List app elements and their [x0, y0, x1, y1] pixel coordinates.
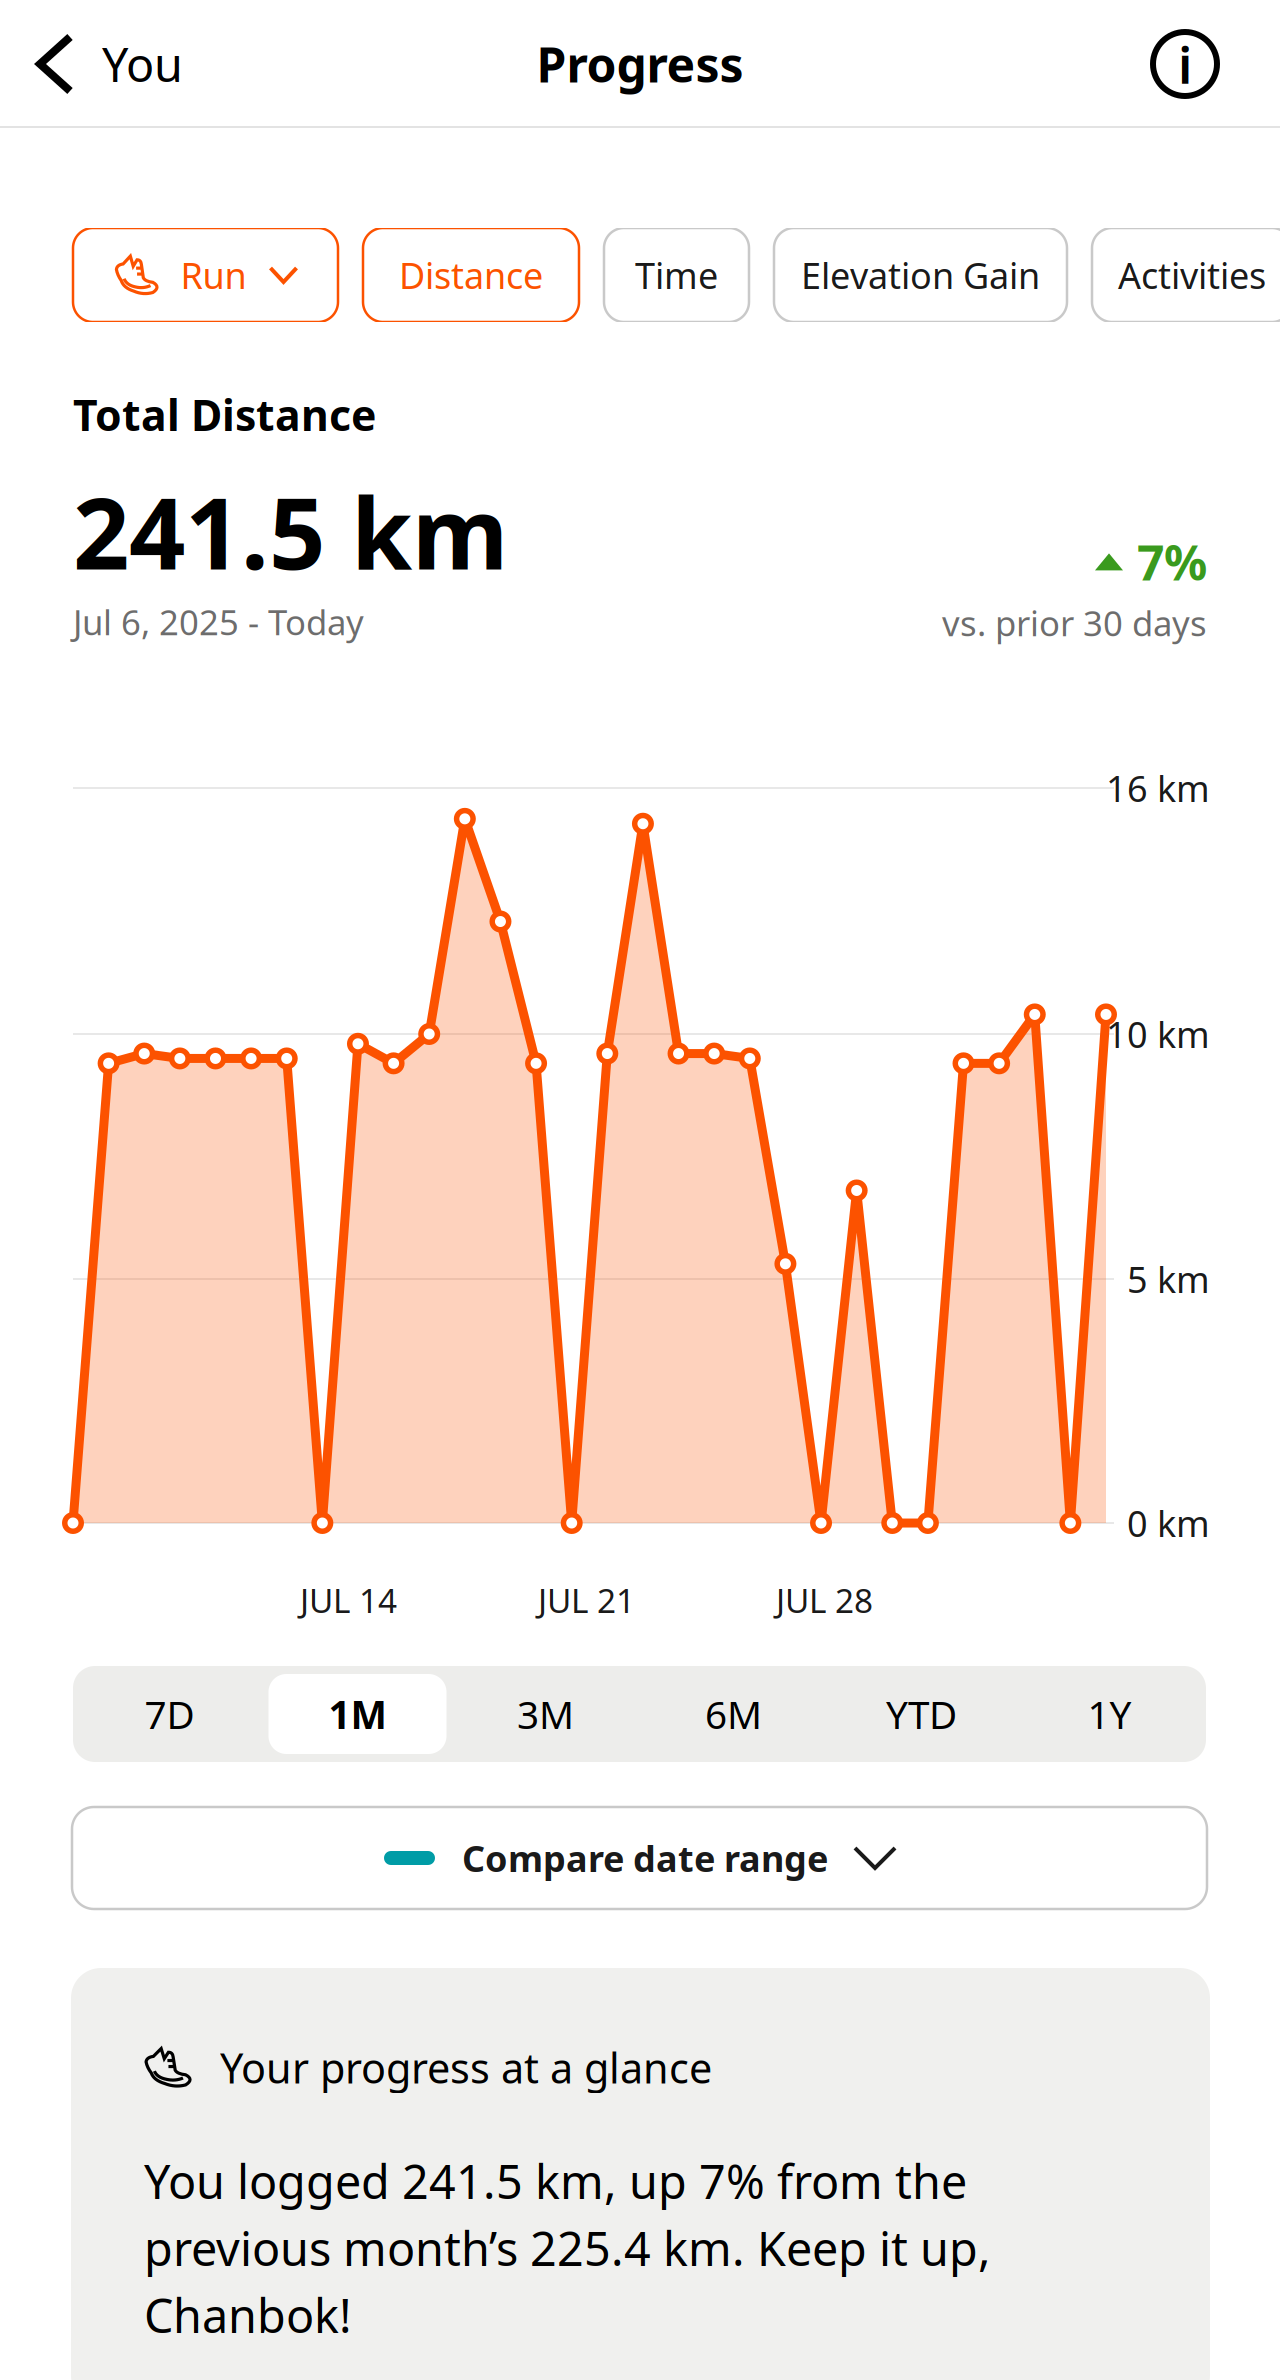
staticText: 1M: [328, 1688, 386, 1740]
staticText: 1Y: [1087, 1688, 1131, 1740]
staticText: You: [102, 33, 183, 95]
staticText: 0 km: [1127, 1499, 1210, 1547]
button[interactable]: YTD: [827, 1666, 1015, 1762]
staticText: Activities: [1118, 251, 1266, 299]
button[interactable]: 1Y: [1015, 1666, 1203, 1762]
staticText: Time: [635, 251, 718, 299]
staticText: Run: [180, 251, 246, 299]
staticText: vs. prior 30 days: [942, 600, 1207, 646]
staticText: 5 km: [1127, 1255, 1210, 1303]
staticText: 7%: [1137, 530, 1207, 594]
button[interactable]: Information: [1122, 0, 1280, 128]
button[interactable]: 6M: [639, 1666, 827, 1762]
button[interactable]: Activities: [1092, 228, 1280, 322]
button[interactable]: Compare date range: [72, 1807, 1207, 1909]
staticText: YTD: [886, 1688, 957, 1740]
staticText: Total Distance: [73, 386, 376, 443]
staticText: 7D: [144, 1688, 194, 1740]
staticText: 6M: [705, 1688, 762, 1740]
staticText: 241.5 km: [73, 466, 508, 597]
staticText: Elevation Gain: [801, 251, 1040, 299]
button[interactable]: Run: [73, 228, 338, 322]
staticText: JUL 21: [538, 1578, 635, 1622]
button[interactable]: 7D: [75, 1666, 263, 1762]
staticText: Jul 6, 2025 - Today: [73, 599, 364, 645]
button[interactable]: You: [0, 0, 207, 128]
staticText: 10 km: [1106, 1010, 1210, 1058]
button[interactable]: 1M: [263, 1666, 451, 1762]
staticText: 16 km: [1106, 764, 1210, 812]
staticText: JUL 14: [300, 1578, 397, 1622]
button[interactable]: Time: [604, 228, 749, 322]
staticText: Distance: [399, 251, 543, 299]
staticText: i: [1178, 30, 1192, 98]
button[interactable]: 3M: [451, 1666, 639, 1762]
staticText: You logged 241.5 km, up 7% from the prev…: [144, 2150, 991, 2346]
staticText: 3M: [517, 1688, 574, 1740]
staticText: Progress: [536, 32, 743, 96]
button[interactable]: Elevation Gain: [774, 228, 1067, 322]
button[interactable]: Distance: [363, 228, 579, 322]
staticText: Your progress at a glance: [220, 2040, 712, 2095]
staticText: Compare date range: [462, 1834, 828, 1882]
staticText: JUL 28: [776, 1578, 873, 1622]
